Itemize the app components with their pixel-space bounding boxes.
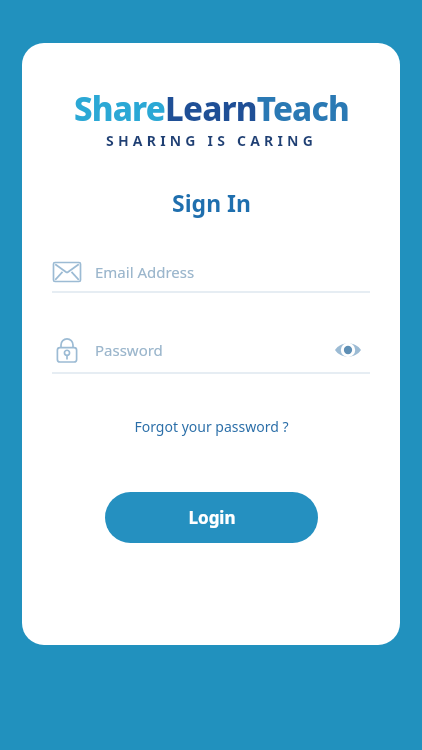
staticText: ShareLearnTeach — [74, 86, 349, 131]
button[interactable]: Password — [52, 328, 326, 372]
button[interactable]: Email Address — [52, 250, 370, 294]
staticText: Email Address — [95, 262, 195, 282]
button[interactable]: Show password — [326, 328, 370, 372]
staticText: Password — [95, 340, 163, 360]
staticText: Login — [188, 506, 236, 529]
button[interactable]: Forgot your password ? — [126, 411, 297, 442]
staticText: Forgot your password ? — [134, 417, 289, 436]
staticText: SHARING IS CARING — [106, 131, 317, 150]
staticText: Sign In — [172, 187, 251, 218]
button[interactable]: Login — [105, 492, 318, 543]
